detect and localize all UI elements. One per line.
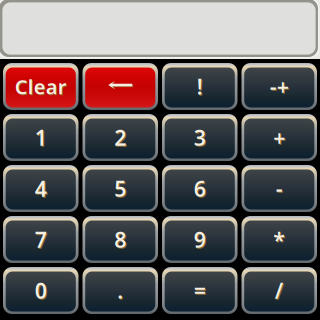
button[interactable]: 1 [3,114,78,161]
staticText: -+ [270,72,289,101]
staticText: * [274,226,286,254]
button[interactable]: - [241,165,317,212]
button[interactable] [82,63,158,110]
staticText: 9 [195,226,207,254]
staticText: 7 [36,226,48,254]
staticText: 7 [35,225,47,254]
staticText: 6 [194,174,206,203]
button[interactable]: / [241,267,317,314]
staticText: -+ [271,73,290,101]
staticText: 5 [115,175,127,203]
staticText: 1 [36,124,48,152]
staticText: Clear [15,73,67,100]
staticText: 0 [36,277,48,305]
button[interactable]: 0 [3,267,78,314]
staticText: 2 [114,123,126,152]
button[interactable]: 2 [82,114,158,161]
staticText: ! [197,72,203,101]
button[interactable]: 5 [82,165,158,212]
button[interactable]: = [162,267,237,314]
button[interactable]: + [241,114,317,161]
staticText: Clear [16,74,68,101]
staticText: 4 [36,175,48,203]
staticText: 8 [114,225,126,254]
staticText: . [118,277,124,305]
staticText: 4 [35,174,47,203]
button[interactable]: Clear [3,63,78,110]
staticText: . [117,276,123,305]
button[interactable]: . [82,267,158,314]
staticText: 1 [35,123,47,152]
staticText: / [276,277,285,305]
button[interactable]: 9 [162,216,237,263]
staticText: - [277,175,284,203]
staticText: 6 [195,175,207,203]
staticText: * [273,225,285,254]
staticText: 8 [115,226,127,254]
staticText: + [274,124,286,152]
button[interactable]: -+ [241,63,317,110]
button[interactable]: 3 [162,114,237,161]
staticText: ! [198,73,204,101]
button[interactable]: 7 [3,216,78,263]
staticText: = [194,276,206,305]
staticText: 0 [35,276,47,305]
staticText: 9 [194,225,206,254]
staticText: 2 [115,124,127,152]
button[interactable]: 6 [162,165,237,212]
staticText: - [276,174,283,203]
button[interactable]: 8 [82,216,158,263]
staticText: 3 [195,124,207,152]
button[interactable]: 4 [3,165,78,212]
staticText: 5 [114,174,126,203]
button[interactable]: * [241,216,317,263]
staticText: 3 [194,123,206,152]
staticText: + [273,123,285,152]
staticText: = [195,277,207,305]
button[interactable]: ! [162,63,237,110]
staticText: / [275,276,284,305]
